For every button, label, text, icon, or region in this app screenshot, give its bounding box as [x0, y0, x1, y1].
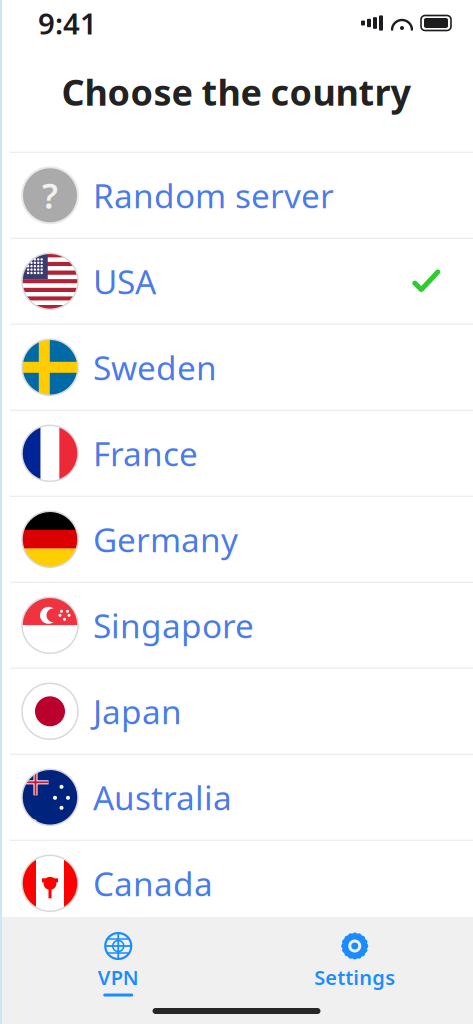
button[interactable]: ?: [0, 153, 473, 238]
staticText: Sweden: [93, 345, 217, 389]
staticText: Random server: [93, 173, 334, 217]
button[interactable]: USA: [0, 239, 473, 324]
staticText: 9:41: [38, 3, 97, 42]
staticText: Japan: [93, 689, 182, 733]
staticText: VPN: [98, 964, 139, 991]
button[interactable]: Germany: [0, 497, 473, 582]
button[interactable]: Japan: [0, 669, 473, 754]
staticText: Canada: [93, 861, 213, 905]
button[interactable]: Sweden: [0, 325, 473, 410]
staticText: Germany: [93, 517, 238, 561]
button[interactable]: France: [0, 411, 473, 496]
button[interactable]: Australia: [0, 755, 473, 840]
staticText: Australia: [93, 775, 232, 819]
button[interactable]: Canada: [0, 841, 473, 926]
staticText: ?: [42, 172, 58, 218]
button[interactable]: Singapore: [0, 583, 473, 668]
staticText: France: [93, 431, 198, 475]
button[interactable]: Settings: [236, 923, 473, 1005]
staticText: Choose the country: [61, 68, 411, 116]
button[interactable]: VPN: [0, 923, 236, 1005]
staticText: Settings: [314, 964, 395, 991]
staticText: Singapore: [93, 603, 254, 647]
staticText: USA: [93, 259, 156, 303]
